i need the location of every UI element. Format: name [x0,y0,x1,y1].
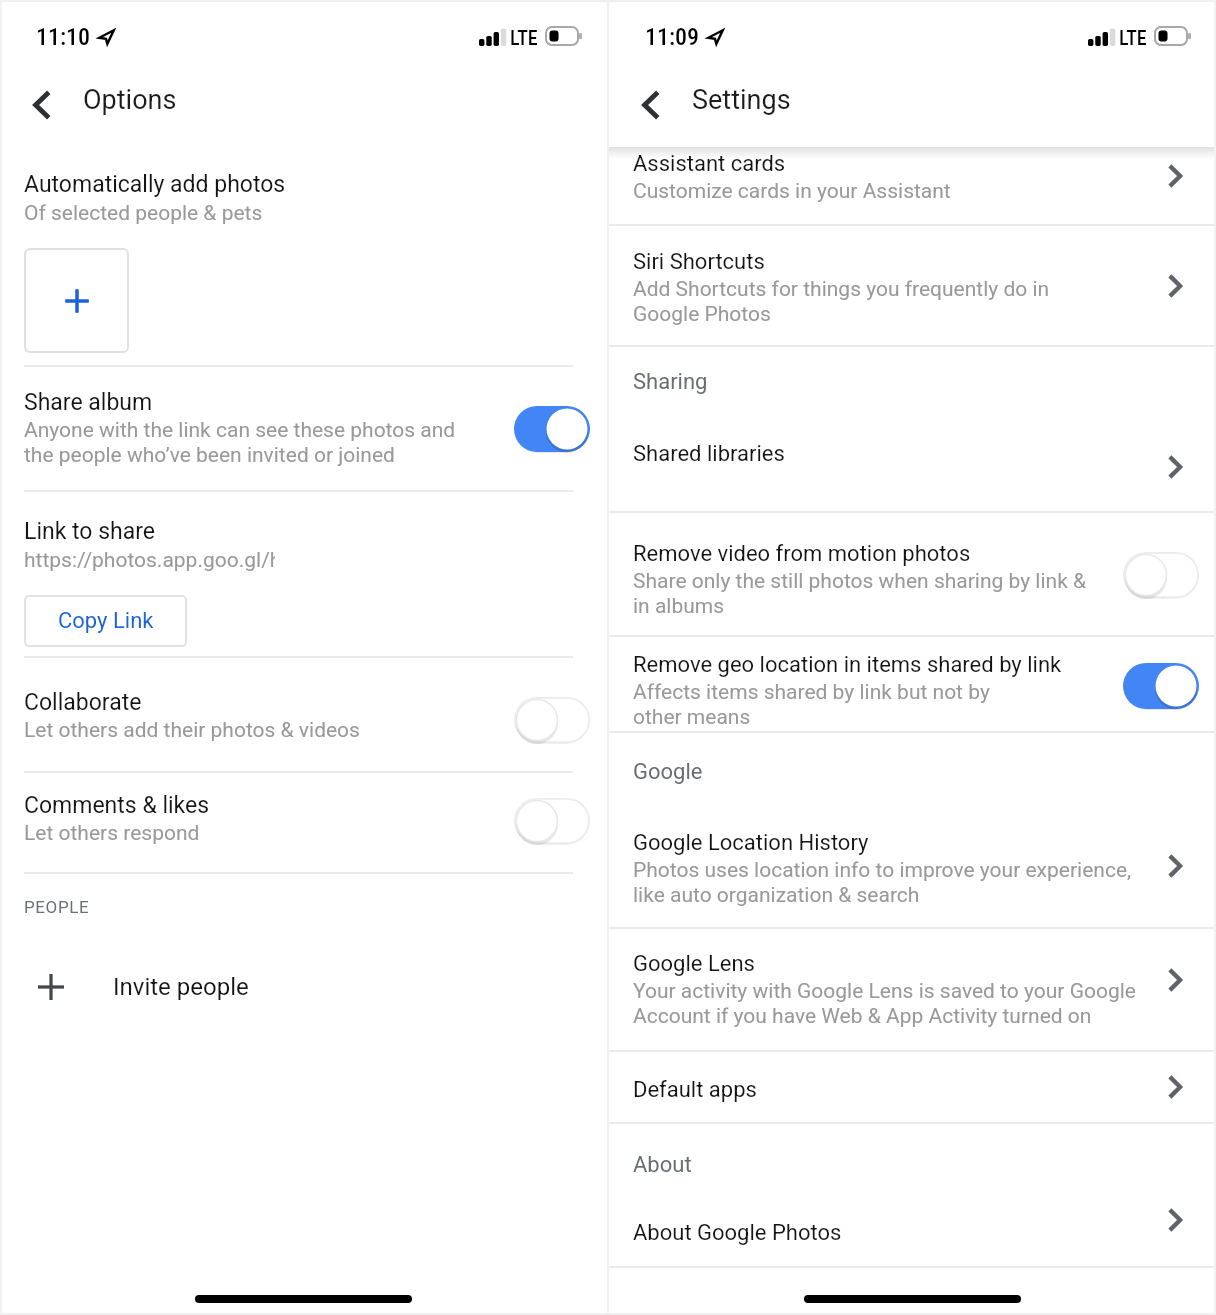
staticText: Share only the still photos when sharing… [633,569,1087,619]
button[interactable]: Copy Link [24,595,187,647]
staticText: About [633,1152,692,1178]
staticText: 11:10 [36,23,91,51]
staticText: Automatically add photos [24,171,286,198]
button[interactable]: Shared libraries [609,419,1216,511]
staticText: Of selected people & pets [24,201,263,226]
button[interactable]: About Google Photos [609,1196,1216,1266]
staticText: Let others add their photos & videos [24,718,360,743]
staticText: Anyone with the link can see these photo… [24,418,456,468]
staticText: Customize cards in your Assistant [633,179,951,204]
button[interactable]: Default apps [609,1052,1216,1122]
button[interactable]: Assistant cards [609,147,1216,224]
button[interactable]: Remove video from motion photos [609,513,1216,635]
button[interactable]: Toggle on [1123,663,1199,709]
staticText: Let others respond [24,821,200,846]
staticText: Shared libraries [633,441,785,467]
staticText: Default apps [633,1077,757,1103]
staticText: Your activity with Google Lens is saved … [633,979,1136,1029]
button[interactable]: Back [25,88,59,122]
button[interactable]: Collaborate [0,658,607,771]
button[interactable]: Add people [24,248,129,353]
staticText: Options [83,84,177,116]
staticText: Assistant cards [633,151,786,177]
staticText: Siri Shortcuts [633,249,765,275]
staticText: Photos uses location info to improve you… [633,858,1132,908]
staticText: Google [633,759,703,785]
staticText: Collaborate [24,689,142,716]
staticText: Link to share [24,518,155,545]
staticText: Affects items shared by link but not by … [633,680,990,730]
button[interactable]: Invite people [0,973,607,1001]
button[interactable]: Google Lens [609,929,1216,1050]
button[interactable]: Toggle off [514,697,590,743]
staticText: LTE [1119,26,1147,49]
staticText: About Google Photos [633,1220,842,1246]
button[interactable]: Siri Shortcuts [609,226,1216,345]
staticText: https://photos.app.goo.gl/hy [24,548,275,573]
button[interactable]: Toggle off [1123,552,1199,598]
staticText: PEOPLE [24,897,90,917]
button[interactable]: Google Location History [609,805,1216,927]
staticText: 11:09 [645,23,700,51]
staticText: Remove geo location in items shared by l… [633,652,1062,678]
staticText: Copy Link [58,608,154,634]
button[interactable]: Share album [0,367,607,490]
button[interactable]: Remove geo location in items shared by l… [609,637,1216,731]
staticText: Comments & likes [24,792,210,819]
staticText: Google Location History [633,830,869,856]
button[interactable]: Toggle off [514,798,590,844]
button[interactable]: Toggle on [514,406,590,452]
staticText: Settings [692,84,791,116]
staticText: Add Shortcuts for things you frequently … [633,277,1050,327]
button[interactable]: Comments & likes [0,773,607,872]
staticText: Share album [24,389,153,416]
staticText: Remove video from motion photos [633,541,971,567]
staticText: Google Lens [633,951,755,977]
staticText: LTE [510,26,538,49]
button[interactable]: Back [634,88,668,122]
staticText: Sharing [633,369,708,395]
staticText: Invite people [113,973,249,1001]
